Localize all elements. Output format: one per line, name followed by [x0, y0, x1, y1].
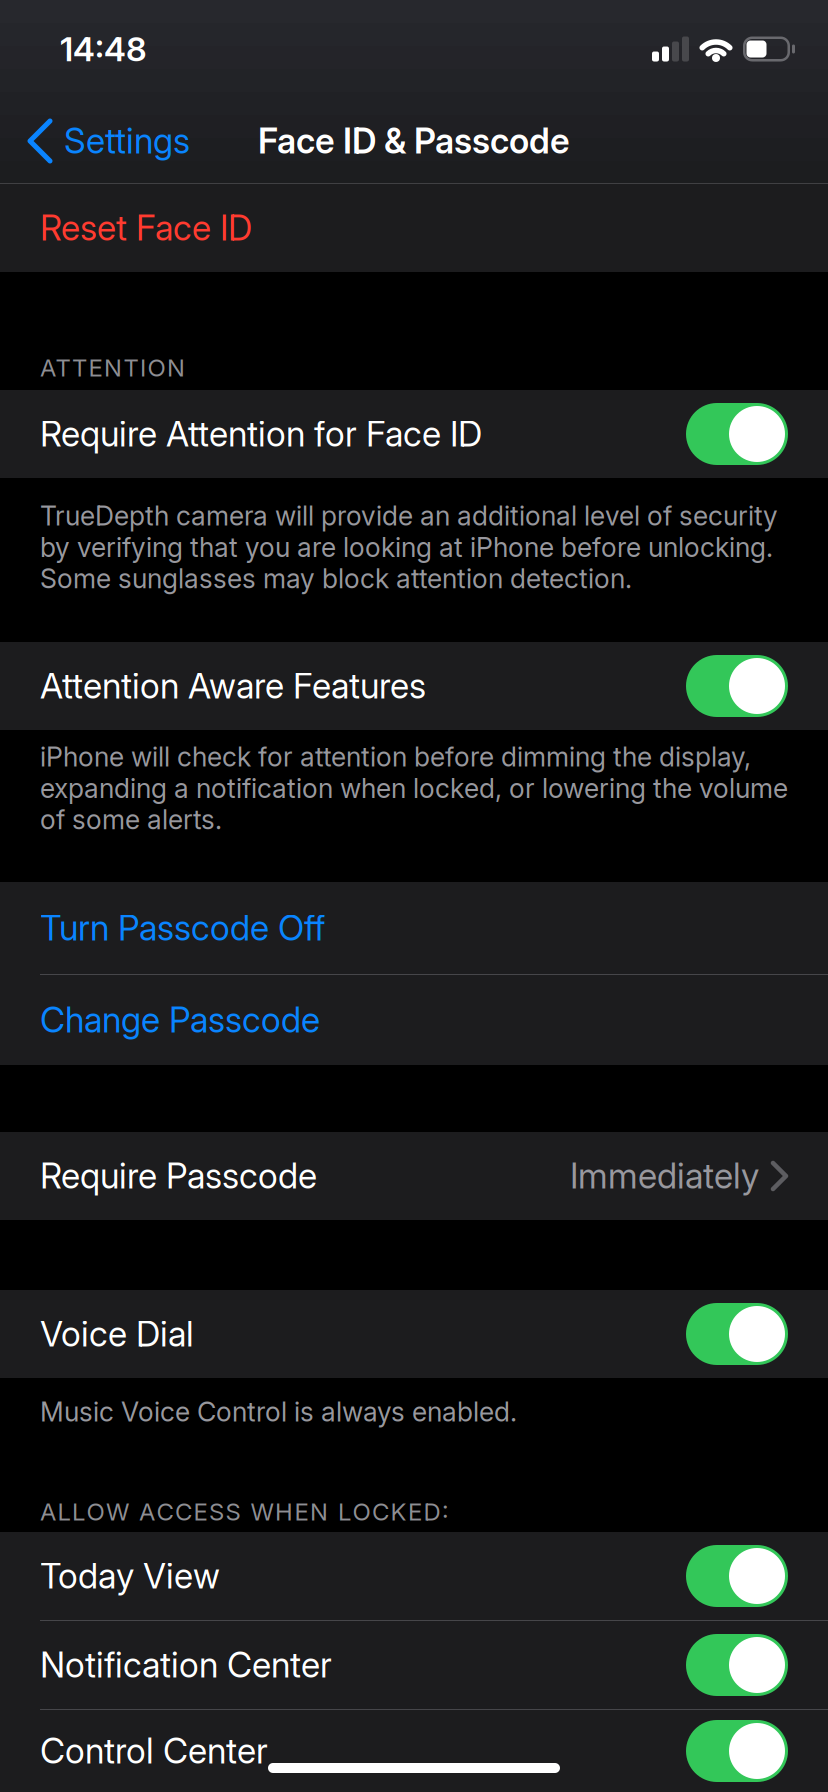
- button[interactable]: Require Passcode: [0, 1132, 828, 1220]
- staticText: Require Attention for Face ID: [40, 414, 482, 454]
- button[interactable]: Back: [0, 121, 190, 161]
- staticText: ATTENTION: [40, 354, 185, 382]
- staticText: Require Passcode: [40, 1156, 317, 1196]
- button[interactable]: Change Passcode: [0, 975, 828, 1065]
- button[interactable]: Attention Aware Features: [686, 655, 788, 717]
- staticText: Face ID & Passcode: [258, 121, 570, 161]
- staticText: Settings: [64, 121, 190, 161]
- button[interactable]: Notification Center: [686, 1634, 788, 1696]
- button[interactable]: Voice Dial: [686, 1303, 788, 1365]
- staticText: Notification Center: [40, 1645, 332, 1685]
- staticText: Today View: [40, 1556, 220, 1596]
- button[interactable]: Reset Face ID: [0, 184, 828, 272]
- staticText: iPhone will check for attention before d…: [40, 741, 788, 835]
- button[interactable]: Turn Passcode Off: [0, 882, 828, 974]
- button[interactable]: Today View: [686, 1545, 788, 1607]
- staticText: Voice Dial: [40, 1314, 194, 1354]
- staticText: 14:48: [60, 29, 147, 69]
- staticText: TrueDepth camera will provide an additio…: [40, 500, 778, 594]
- staticText: ALLOW ACCESS WHEN LOCKED:: [40, 1498, 449, 1526]
- staticText: Attention Aware Features: [40, 666, 426, 706]
- staticText: Immediately: [570, 1156, 759, 1196]
- staticText: Control Center: [40, 1731, 268, 1771]
- staticText: Turn Passcode Off: [40, 908, 325, 948]
- staticText: Change Passcode: [40, 1000, 320, 1040]
- button[interactable]: Require Attention for Face ID: [686, 403, 788, 465]
- staticText: Music Voice Control is always enabled.: [40, 1396, 517, 1427]
- staticText: Reset Face ID: [40, 208, 252, 248]
- button[interactable]: Control Center: [686, 1720, 788, 1782]
